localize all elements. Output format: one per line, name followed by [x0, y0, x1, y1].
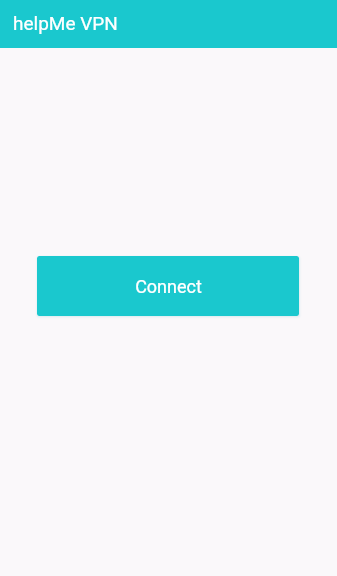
staticText: Connect — [135, 276, 202, 297]
button[interactable]: Connect — [37, 256, 299, 316]
staticText: helpMe VPN — [13, 12, 118, 34]
